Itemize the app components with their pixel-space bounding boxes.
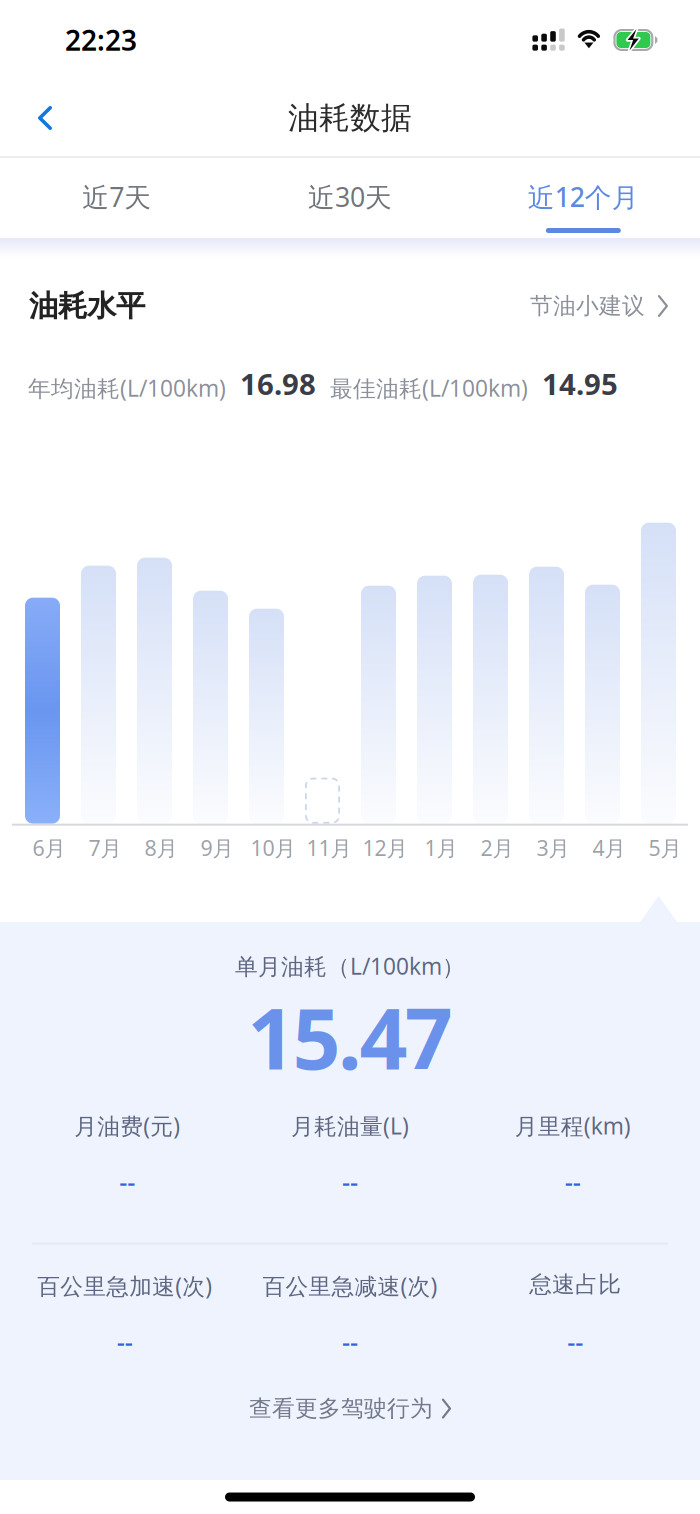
staticText: 百公里急加速(次): [37, 1271, 212, 1301]
staticText: 12月: [362, 834, 407, 862]
staticText: --: [119, 1165, 135, 1199]
staticText: 近7天: [82, 179, 151, 214]
button[interactable]: 查看更多驾驶行为: [249, 1367, 451, 1436]
staticText: 15.47: [247, 981, 453, 1093]
staticText: 百公里急减速(次): [262, 1271, 437, 1301]
staticText: 16.98: [240, 364, 316, 403]
staticText: 单月油耗（L/100km）: [235, 951, 465, 981]
staticText: --: [567, 1325, 583, 1359]
button[interactable]: 节油小建议: [530, 292, 668, 320]
staticText: 9月: [200, 834, 233, 862]
staticText: 怠速占比: [529, 1271, 621, 1298]
staticText: --: [117, 1325, 133, 1359]
staticText: 8月: [144, 834, 177, 862]
staticText: 油耗水平: [29, 288, 145, 324]
staticText: 3月: [536, 834, 569, 862]
button[interactable]: 近12个月: [467, 158, 700, 238]
staticText: 4月: [592, 834, 625, 862]
staticText: --: [342, 1165, 358, 1199]
staticText: 1月: [424, 834, 457, 862]
staticText: 11月: [306, 834, 351, 862]
staticText: 年均油耗(L/100km): [28, 373, 226, 403]
staticText: 月油费(元): [74, 1111, 180, 1141]
staticText: 最佳油耗(L/100km): [330, 373, 528, 403]
staticText: 月里程(km): [515, 1111, 631, 1141]
staticText: 节油小建议: [530, 292, 645, 320]
button[interactable]: 近7天: [0, 158, 233, 238]
staticText: 6月: [32, 834, 65, 862]
staticText: 5月: [648, 834, 681, 862]
staticText: 查看更多驾驶行为: [249, 1395, 433, 1422]
staticText: 22:23: [65, 21, 137, 59]
staticText: 月耗油量(L): [291, 1111, 409, 1141]
staticText: 7月: [88, 834, 121, 862]
staticText: 10月: [250, 834, 295, 862]
button[interactable]: 返回: [4, 80, 86, 156]
staticText: 近12个月: [528, 179, 639, 214]
staticText: 油耗数据: [288, 99, 412, 137]
staticText: 近30天: [308, 179, 392, 214]
button[interactable]: 近30天: [233, 158, 467, 238]
staticText: --: [565, 1165, 581, 1199]
staticText: 2月: [480, 834, 513, 862]
staticText: --: [342, 1325, 358, 1359]
staticText: 14.95: [542, 364, 618, 403]
